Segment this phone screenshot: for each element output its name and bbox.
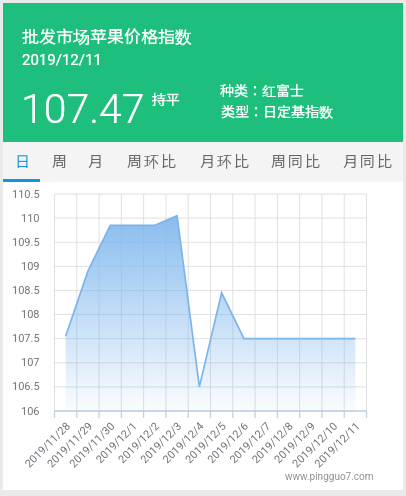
button[interactable]: 周同比 <box>260 142 331 179</box>
staticText: 种类：红富士 <box>220 80 304 100</box>
button[interactable]: 周环比 <box>114 142 188 179</box>
staticText: 批发市场苹果价格指数 <box>22 23 192 48</box>
button[interactable]: 月 <box>76 142 114 179</box>
staticText: 107.47 <box>21 85 145 133</box>
staticText: 类型：日定基指数 <box>221 101 333 121</box>
staticText: 月 <box>88 150 105 172</box>
staticText: 日 <box>15 150 32 172</box>
staticText: 周同比 <box>271 150 322 172</box>
button[interactable]: 月环比 <box>188 142 260 179</box>
staticText: 持平 <box>152 89 180 109</box>
staticText: 周环比 <box>127 150 178 172</box>
staticText: 月同比 <box>343 150 394 172</box>
button[interactable]: 周 <box>42 142 76 179</box>
button[interactable]: 日 <box>3 142 42 179</box>
staticText: 月环比 <box>200 150 251 172</box>
staticText: 2019/12/11 <box>22 51 102 69</box>
button[interactable]: 月同比 <box>331 142 403 179</box>
staticText: 周 <box>52 150 69 172</box>
